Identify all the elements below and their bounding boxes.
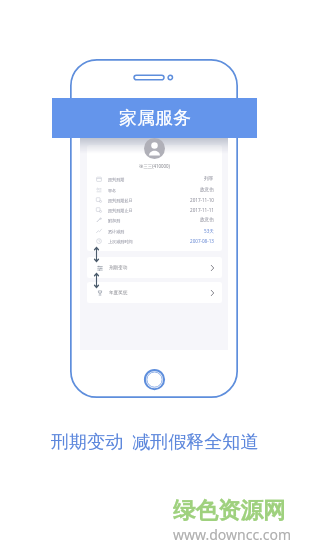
- staticText: 列罪: [204, 176, 214, 182]
- staticText: 53天: [204, 228, 214, 234]
- button[interactable]: 年度奖惩: [87, 282, 222, 303]
- staticText: www.downcc.com: [173, 525, 292, 544]
- staticText: 2007-08-13: [190, 238, 214, 244]
- staticText: 2017-11-10: [190, 197, 214, 203]
- staticText: 2017-11-11: [190, 207, 214, 213]
- staticText: 故意伤: [200, 187, 214, 193]
- staticText: 年度奖惩: [109, 290, 128, 296]
- staticText: 附加刑: [108, 218, 121, 223]
- staticText: 家属服务: [119, 107, 191, 130]
- staticText: 累计减刑: [108, 229, 125, 234]
- staticText: 罪名: [108, 188, 117, 193]
- staticText: 故意伤: [200, 217, 214, 223]
- staticText: 张三三(410000): [139, 163, 170, 169]
- button[interactable]: 刑期变动: [87, 257, 222, 278]
- staticText: 绿色资源网: [173, 496, 286, 524]
- staticText: 原判刑期起日: [108, 198, 133, 203]
- staticText: 上次减刑时间: [108, 239, 133, 244]
- staticText: 原判刑期止日: [108, 208, 133, 213]
- staticText: 刑期变动 减刑假释全知道: [51, 429, 259, 454]
- staticText: 原判刑期: [108, 177, 125, 182]
- staticText: 刑期变动: [109, 265, 128, 271]
